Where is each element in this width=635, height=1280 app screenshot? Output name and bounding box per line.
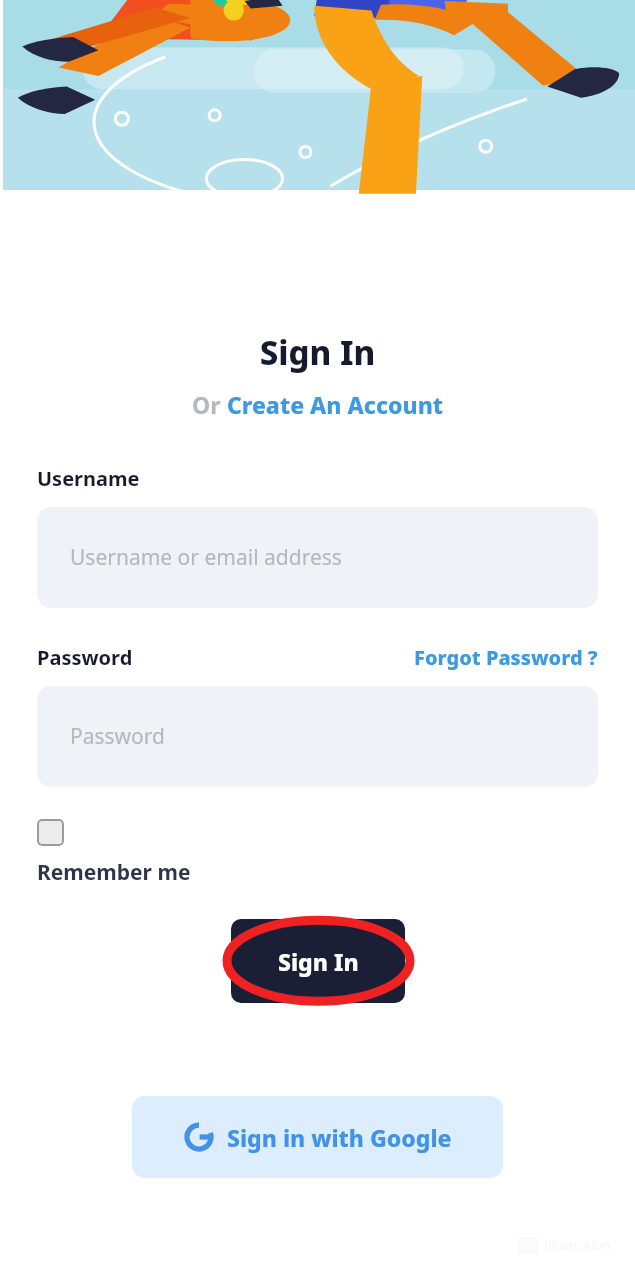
staticText: Password	[70, 722, 165, 751]
staticText: Username	[37, 465, 140, 492]
button[interactable]: Password	[37, 686, 598, 787]
staticText: Create An Account	[227, 389, 444, 420]
button[interactable]: Forgot Password ?	[414, 644, 598, 671]
button[interactable]: Sign in with Google	[132, 1096, 503, 1178]
other: Remember me checkbox	[37, 819, 64, 846]
staticText: Sign In	[0, 330, 635, 375]
staticText: Sign in with Google	[227, 1122, 452, 1153]
staticText: Password	[37, 644, 133, 671]
staticText: Username or email address	[70, 543, 342, 572]
button[interactable]: Sign In	[231, 919, 405, 1003]
button[interactable]: Username or email address	[37, 507, 598, 608]
staticText: Or	[192, 389, 227, 420]
staticText: Remember me	[37, 858, 191, 887]
staticText: Forgot Password ?	[414, 644, 598, 671]
button[interactable]: Create An Account	[227, 389, 444, 420]
staticText: Sign In	[278, 946, 359, 977]
button[interactable]: Remember me checkbox	[37, 819, 191, 887]
